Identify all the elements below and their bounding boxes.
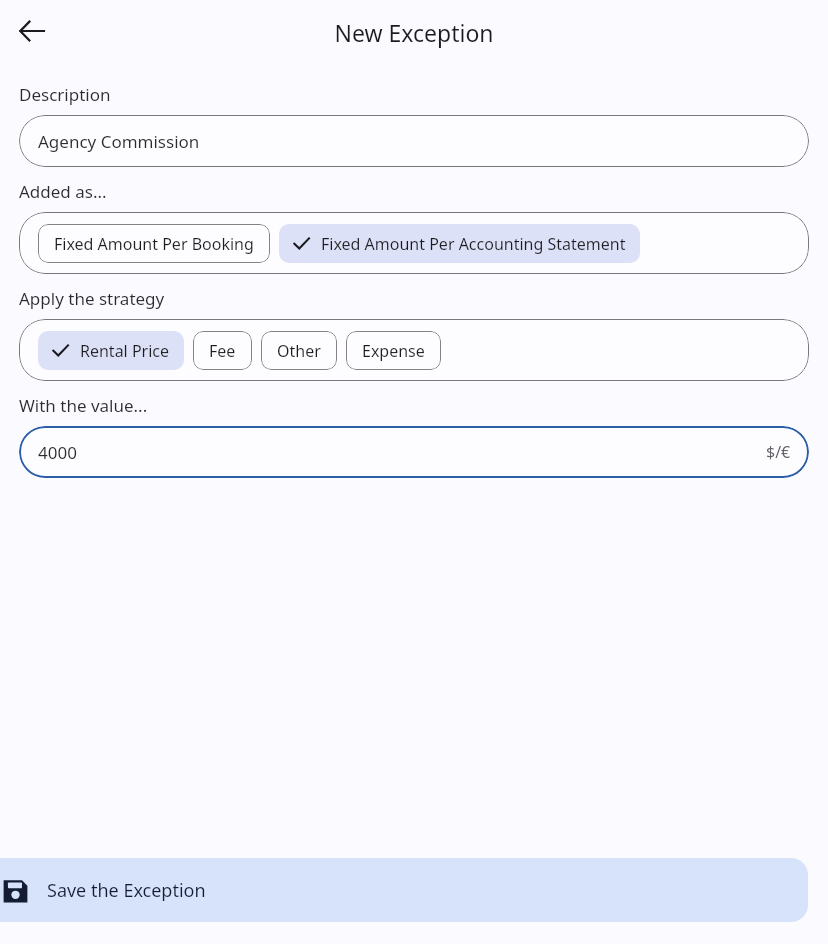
staticText: $/€ <box>766 441 791 463</box>
button[interactable]: Save the Exception <box>0 858 808 922</box>
staticText: Fixed Amount Per Accounting Statement <box>321 233 626 255</box>
button[interactable]: Expense <box>346 331 441 370</box>
button[interactable]: Rental Price <box>38 331 184 370</box>
staticText: Expense <box>362 340 425 362</box>
button[interactable]: Fixed Amount Per Booking <box>38 224 270 263</box>
button[interactable]: Back <box>8 7 56 55</box>
staticText: Save the Exception <box>47 878 206 903</box>
staticText: Fee <box>209 340 236 362</box>
staticText: Description <box>19 83 111 106</box>
button[interactable]: 4000 <box>19 426 809 478</box>
button[interactable]: Other <box>261 331 337 370</box>
staticText: Apply the strategy <box>19 287 165 310</box>
button[interactable]: Fee <box>193 331 252 370</box>
staticText: Fixed Amount Per Booking <box>54 233 254 255</box>
staticText: Agency Commission <box>38 130 200 153</box>
staticText: Added as... <box>19 180 107 203</box>
staticText: Other <box>277 340 321 362</box>
button[interactable]: Agency Commission <box>19 115 809 167</box>
staticText: With the value... <box>19 394 148 417</box>
staticText: 4000 <box>38 441 77 464</box>
button[interactable]: Fixed Amount Per Accounting Statement <box>279 224 640 263</box>
staticText: New Exception <box>0 17 828 48</box>
staticText: Rental Price <box>80 340 170 362</box>
